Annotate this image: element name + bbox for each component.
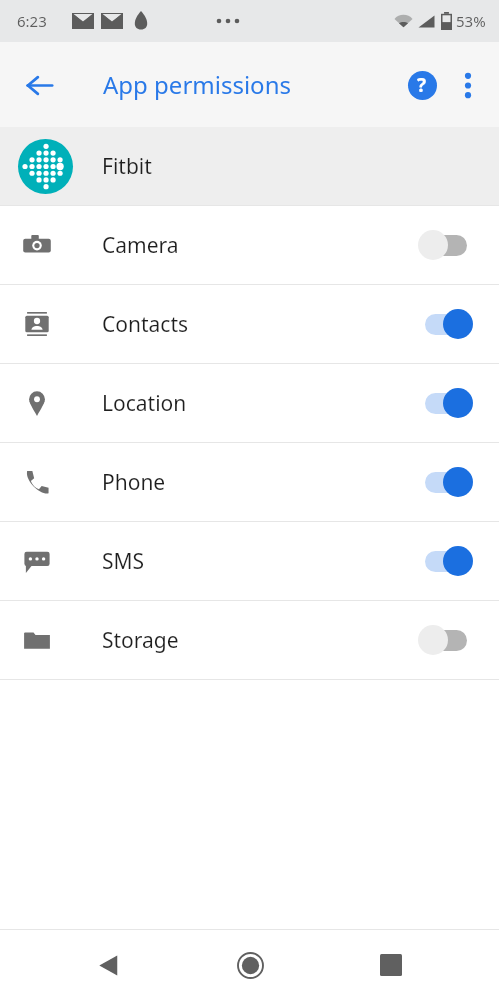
button[interactable]: More options (446, 63, 490, 107)
button[interactable]: Camera (0, 206, 499, 284)
staticText: Location (102, 389, 415, 418)
staticText: Contacts (102, 310, 415, 339)
button[interactable]: Storage permission (415, 615, 477, 665)
button[interactable]: Storage (0, 601, 499, 679)
staticText: App permissions (103, 68, 291, 101)
button[interactable]: Fitbit (0, 127, 499, 205)
staticText: 53% (456, 11, 486, 31)
button[interactable]: Contacts permission (415, 299, 477, 349)
button[interactable]: Recent apps (358, 932, 424, 998)
staticText: Fitbit (102, 152, 152, 181)
button[interactable]: Help (398, 61, 446, 109)
button[interactable]: SMS (0, 522, 499, 600)
button[interactable]: SMS permission (415, 536, 477, 586)
button[interactable]: Camera permission (415, 220, 477, 270)
staticText: 6:23 (17, 11, 47, 31)
staticText: Phone (102, 468, 415, 497)
button[interactable]: Contacts (0, 285, 499, 363)
staticText: SMS (102, 547, 415, 576)
button[interactable]: Location permission (415, 378, 477, 428)
button[interactable]: Location (0, 364, 499, 442)
staticText: Camera (102, 231, 415, 260)
button[interactable]: Back (75, 932, 141, 998)
button[interactable]: Home (217, 932, 283, 998)
staticText: Storage (102, 626, 415, 655)
button[interactable]: Phone (0, 443, 499, 521)
button[interactable]: Phone permission (415, 457, 477, 507)
staticText: ? (417, 72, 427, 98)
button[interactable]: Back (13, 59, 65, 111)
